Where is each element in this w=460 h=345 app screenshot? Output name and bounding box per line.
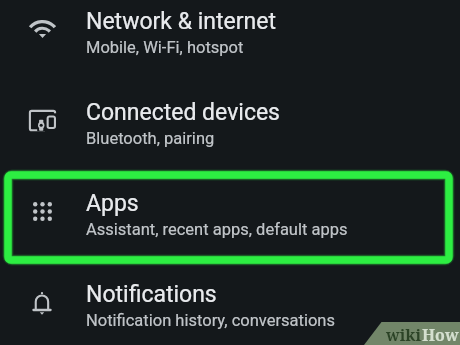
button[interactable]: Notifications: [0, 260, 460, 345]
staticText: Network & internet: [86, 8, 276, 35]
staticText: Mobile, Wi-Fi, hotspot: [86, 38, 244, 57]
staticText: Apps: [86, 190, 139, 217]
button[interactable]: Network & internet: [0, 0, 460, 78]
staticText: Notification history, conversations: [86, 311, 335, 330]
button[interactable]: Connected devices: [0, 78, 460, 169]
button[interactable]: Apps: [0, 169, 460, 260]
staticText: Bluetooth, pairing: [86, 129, 215, 148]
staticText: Connected devices: [86, 99, 280, 126]
staticText: How: [422, 324, 459, 345]
staticText: wiki: [386, 324, 422, 345]
staticText: Assistant, recent apps, default apps: [86, 220, 348, 239]
staticText: Notifications: [86, 281, 217, 308]
